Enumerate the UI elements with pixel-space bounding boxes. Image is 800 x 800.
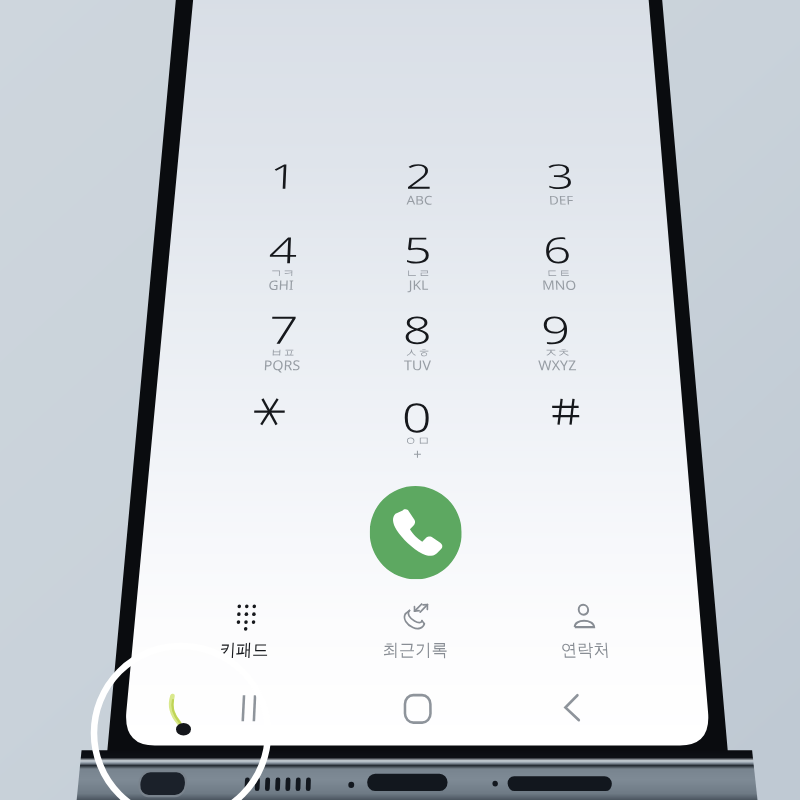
staticText: 5 [404,225,433,274]
staticText: ㅈㅊ [544,345,571,360]
staticText: 9 [540,303,572,355]
button[interactable]: 1 [220,152,344,233]
staticText: ㅇㅁ [404,432,430,448]
button[interactable]: Home [378,679,458,741]
button[interactable] [199,389,335,485]
button[interactable] [500,389,637,485]
staticText: 0 [402,389,433,444]
button[interactable]: 5 [355,225,481,310]
button[interactable]: 9 [491,303,623,393]
staticText: 8 [403,303,433,355]
staticText: MNO [542,276,577,293]
staticText: 연락처 [560,640,610,661]
staticText: ABC [406,191,433,208]
staticText: ㅂㅍ [270,345,296,360]
staticText: JKL [409,276,429,293]
button[interactable]: Back [530,679,613,741]
staticText: 3 [545,152,576,199]
staticText: DEF [548,191,574,208]
staticText: 1 [269,152,299,199]
staticText: PQRS [263,355,301,374]
button[interactable]: 2 [358,152,481,233]
button[interactable]: 키패드 [160,599,326,681]
button[interactable]: 최근기록 [333,599,498,681]
staticText: 6 [542,225,573,274]
staticText: 2 [405,152,434,199]
button[interactable]: Call [369,486,463,579]
staticText: 최근기록 [383,640,448,661]
button[interactable]: 6 [495,225,624,310]
button[interactable]: 3 [499,152,624,233]
button[interactable]: 연락처 [502,599,669,681]
staticText: 키패드 [219,640,269,661]
button[interactable]: 7 [216,303,348,393]
button[interactable]: 4 [217,225,345,310]
staticText: 7 [268,303,300,355]
staticText: ㄷㅌ [546,266,572,280]
staticText: 4 [268,225,299,274]
button[interactable]: 8 [353,303,483,393]
staticText: ㅅㅎ [405,345,431,360]
button[interactable]: Recent apps [208,679,290,741]
staticText: ㄴㄹ [406,266,431,280]
staticText: GHI [268,276,295,293]
staticText: TUV [404,355,432,374]
staticText: WXYZ [538,355,577,374]
button[interactable]: 0 [351,389,484,485]
staticText: + [413,443,422,463]
staticText: ㄱㅋ [270,266,295,280]
